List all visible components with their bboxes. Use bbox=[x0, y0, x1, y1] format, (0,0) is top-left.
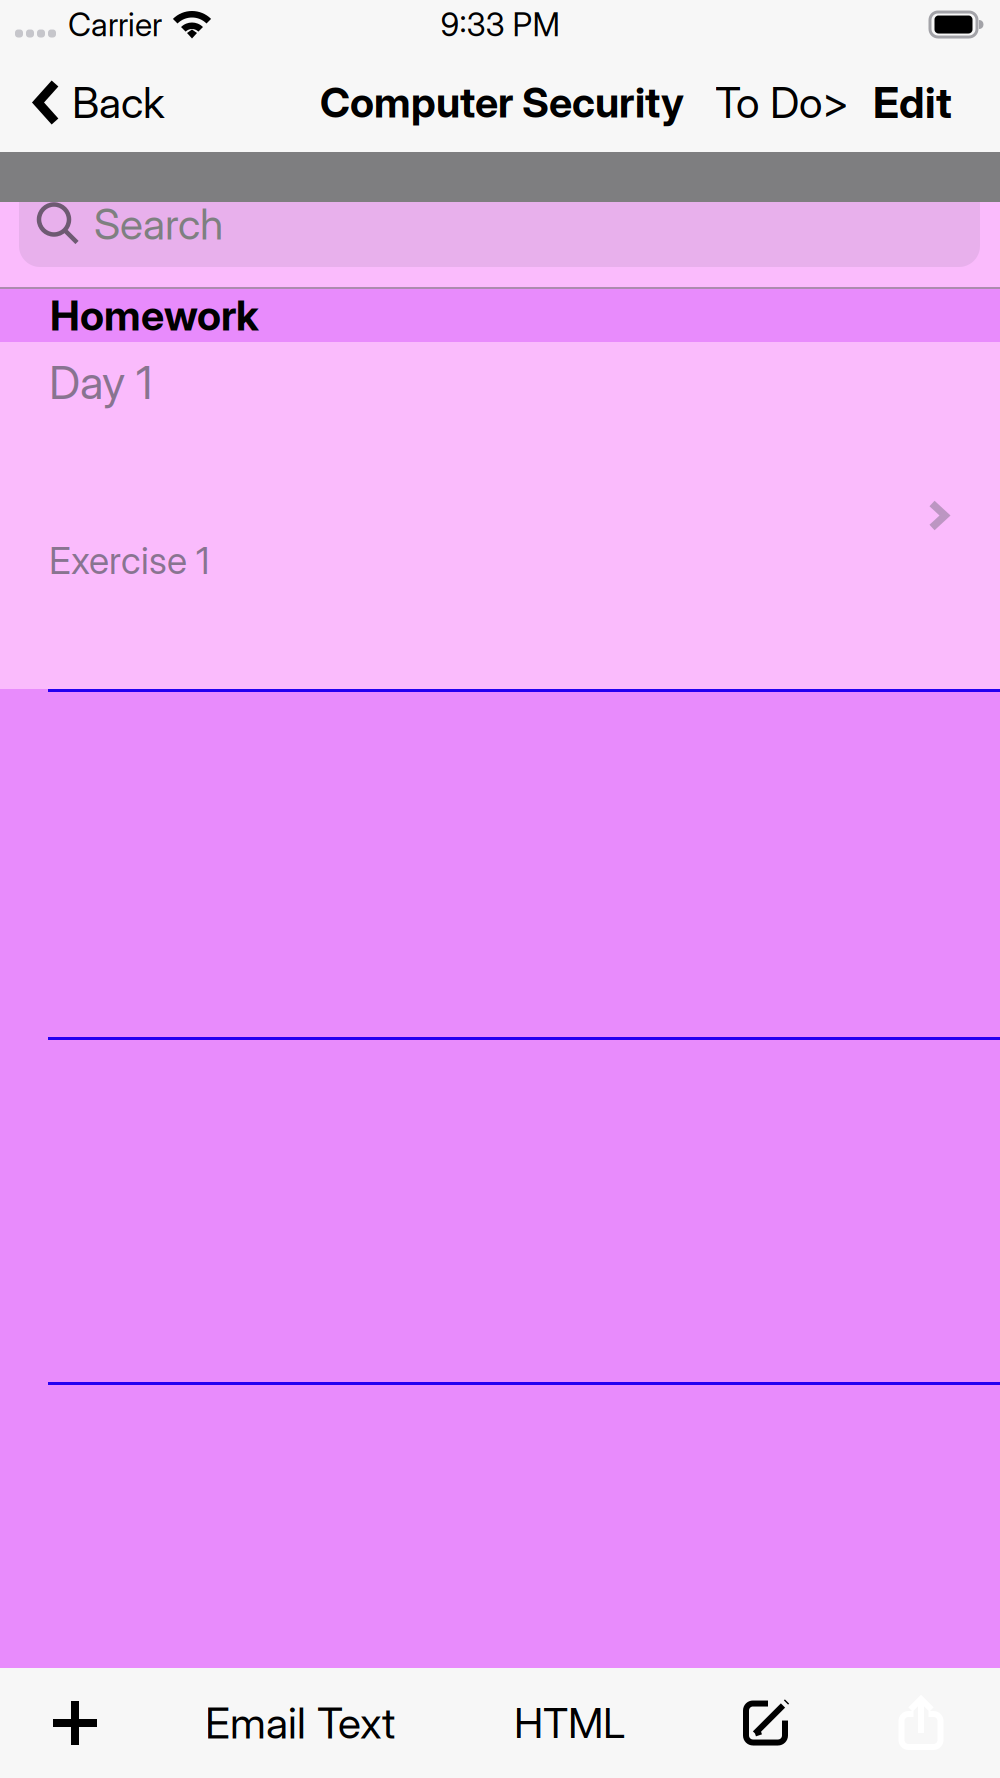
button[interactable]: Add bbox=[0, 1668, 150, 1778]
staticText: Computer Security bbox=[320, 77, 684, 127]
button[interactable]: Edit bbox=[865, 53, 970, 152]
staticText: Search bbox=[94, 198, 223, 250]
staticText: Back bbox=[72, 77, 165, 128]
staticText: Exercise 1 bbox=[49, 538, 210, 583]
staticText: Carrier bbox=[68, 5, 162, 44]
staticText: Day 1 bbox=[49, 355, 152, 410]
staticText: Homework bbox=[50, 290, 259, 340]
staticText: Edit bbox=[873, 77, 952, 128]
button[interactable]: HTML bbox=[450, 1668, 689, 1778]
button[interactable]: To Do> bbox=[685, 53, 865, 152]
staticText: HTML bbox=[514, 1698, 625, 1748]
staticText: 9:33 PM bbox=[440, 5, 559, 44]
button[interactable]: Day 1 bbox=[0, 342, 1000, 689]
button[interactable]: Compose bbox=[689, 1668, 842, 1778]
button[interactable]: Back bbox=[0, 53, 183, 152]
button[interactable]: Email Text bbox=[150, 1668, 450, 1778]
staticText: To Do> bbox=[715, 77, 849, 128]
staticText: Email Text bbox=[205, 1697, 395, 1749]
